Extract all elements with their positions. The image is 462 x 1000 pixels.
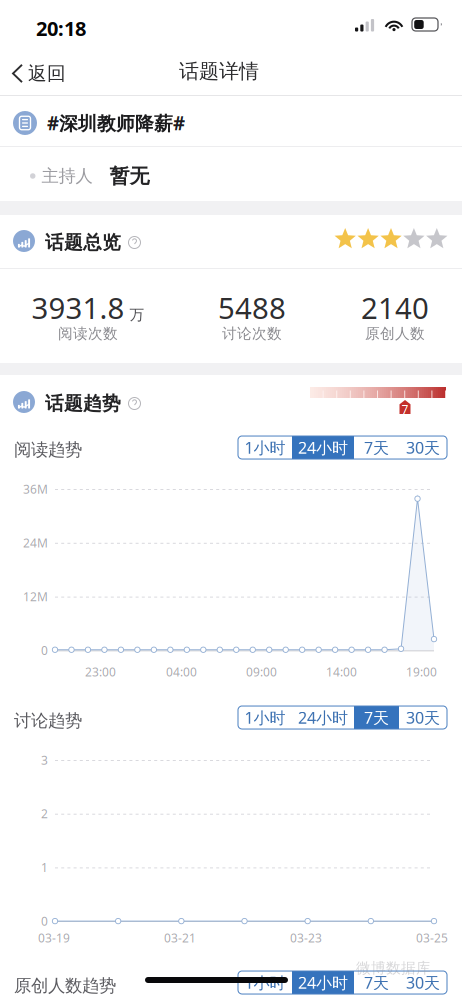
staticText: 1小时 xyxy=(244,972,285,993)
staticText: #深圳教师降薪# xyxy=(47,111,185,135)
staticText: 24小时 xyxy=(298,707,348,728)
staticText: 09:00 xyxy=(246,664,277,680)
staticText: 2 xyxy=(41,806,48,822)
button[interactable]: 24小时 xyxy=(292,971,354,994)
staticText: 19:00 xyxy=(406,664,437,680)
button[interactable]: 7天 xyxy=(354,971,399,994)
staticText: 话题总览 xyxy=(45,231,121,254)
staticText: 万 xyxy=(129,306,144,324)
staticText: 3931.8 xyxy=(31,288,124,327)
staticText: 1小时 xyxy=(244,707,285,728)
button[interactable]: 24小时 xyxy=(292,706,354,729)
staticText: 1 xyxy=(41,859,48,875)
staticText: 暂无 xyxy=(109,164,149,188)
staticText: 14:00 xyxy=(326,664,357,680)
staticText: 30天 xyxy=(406,972,440,993)
staticText: 03-19 xyxy=(38,930,70,946)
staticText: 0 xyxy=(41,642,48,658)
staticText: 话题趋势 xyxy=(45,392,121,415)
staticText: 20:18 xyxy=(36,15,86,42)
staticText: 2140 xyxy=(361,288,429,327)
button[interactable]: 24小时 xyxy=(292,436,354,459)
button[interactable]: 30天 xyxy=(399,706,447,729)
staticText: 原创人数 xyxy=(365,324,425,342)
staticText: 03-25 xyxy=(416,930,448,946)
staticText: 30天 xyxy=(406,437,440,458)
staticText: 主持人 xyxy=(41,165,92,187)
button[interactable]: 7天 xyxy=(354,706,399,729)
button[interactable]: 1小时 xyxy=(238,706,292,729)
staticText: 话题详情 xyxy=(179,59,259,84)
staticText: 03-23 xyxy=(290,930,322,946)
staticText: 04:00 xyxy=(166,664,197,680)
button[interactable]: 1小时 xyxy=(238,436,292,459)
staticText: 讨论趋势 xyxy=(14,710,82,731)
staticText: 7天 xyxy=(364,972,389,993)
staticText: 7天 xyxy=(364,707,389,728)
staticText: 5488 xyxy=(218,288,286,327)
staticText: 12M xyxy=(23,589,48,604)
button[interactable]: #深圳教师降薪# xyxy=(13,110,185,136)
staticText: 7天 xyxy=(364,437,389,458)
staticText: 返回 xyxy=(28,62,66,85)
staticText: 36M xyxy=(23,481,48,497)
staticText: 24M xyxy=(23,535,48,551)
button[interactable]: 30天 xyxy=(399,436,447,459)
staticText: 微博数据库 xyxy=(356,959,431,977)
button[interactable]: 返回 xyxy=(0,56,78,91)
button[interactable]: 30天 xyxy=(399,971,447,994)
button[interactable]: 7天 xyxy=(354,436,399,459)
staticText: 阅读次数 xyxy=(58,324,118,342)
staticText: 23:00 xyxy=(85,664,116,680)
staticText: 30天 xyxy=(406,707,440,728)
staticText: 原创人数趋势 xyxy=(14,975,116,996)
staticText: 03-21 xyxy=(164,930,196,946)
staticText: 讨论次数 xyxy=(222,324,282,342)
staticText: 24小时 xyxy=(298,437,348,458)
staticText: 3 xyxy=(41,752,48,768)
staticText: 0 xyxy=(41,913,48,929)
staticText: 24小时 xyxy=(298,972,348,993)
staticText: 7 xyxy=(401,401,408,417)
staticText: 1小时 xyxy=(244,437,285,458)
button[interactable]: 1小时 xyxy=(238,971,292,994)
staticText: 阅读趋势 xyxy=(14,439,82,460)
